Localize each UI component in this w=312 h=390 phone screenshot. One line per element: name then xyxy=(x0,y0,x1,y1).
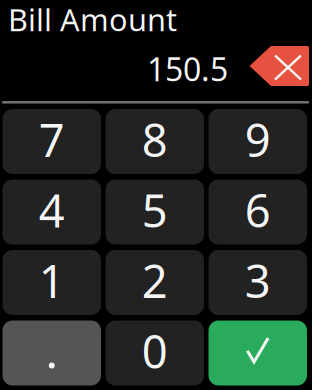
button[interactable]: 3 xyxy=(208,250,307,315)
staticText: 5 xyxy=(142,180,168,240)
staticText: 8 xyxy=(142,109,168,170)
button[interactable]: 0 xyxy=(105,320,204,385)
button[interactable]: Confirm xyxy=(208,320,307,385)
staticText: 7 xyxy=(39,109,65,170)
staticText: 9 xyxy=(245,109,271,170)
button[interactable]: 5 xyxy=(105,179,204,244)
button[interactable]: 6 xyxy=(208,179,307,244)
button[interactable]: 7 xyxy=(2,109,101,174)
button[interactable]: 2 xyxy=(105,250,204,315)
staticText: 0 xyxy=(142,321,168,381)
staticText: 3 xyxy=(245,250,271,311)
button[interactable]: 4 xyxy=(2,179,101,244)
button[interactable]: 1 xyxy=(2,250,101,315)
staticText: 150.5 xyxy=(147,47,228,90)
staticText: 6 xyxy=(245,180,271,240)
button[interactable]: 8 xyxy=(105,109,204,174)
staticText: 1 xyxy=(39,250,65,311)
button[interactable]: Delete xyxy=(249,46,309,86)
staticText: 4 xyxy=(39,180,65,240)
staticText: Bill Amount xyxy=(8,0,177,40)
button[interactable]: Decimal point xyxy=(2,320,101,385)
button[interactable]: 9 xyxy=(208,109,307,174)
staticText: 2 xyxy=(142,250,168,311)
